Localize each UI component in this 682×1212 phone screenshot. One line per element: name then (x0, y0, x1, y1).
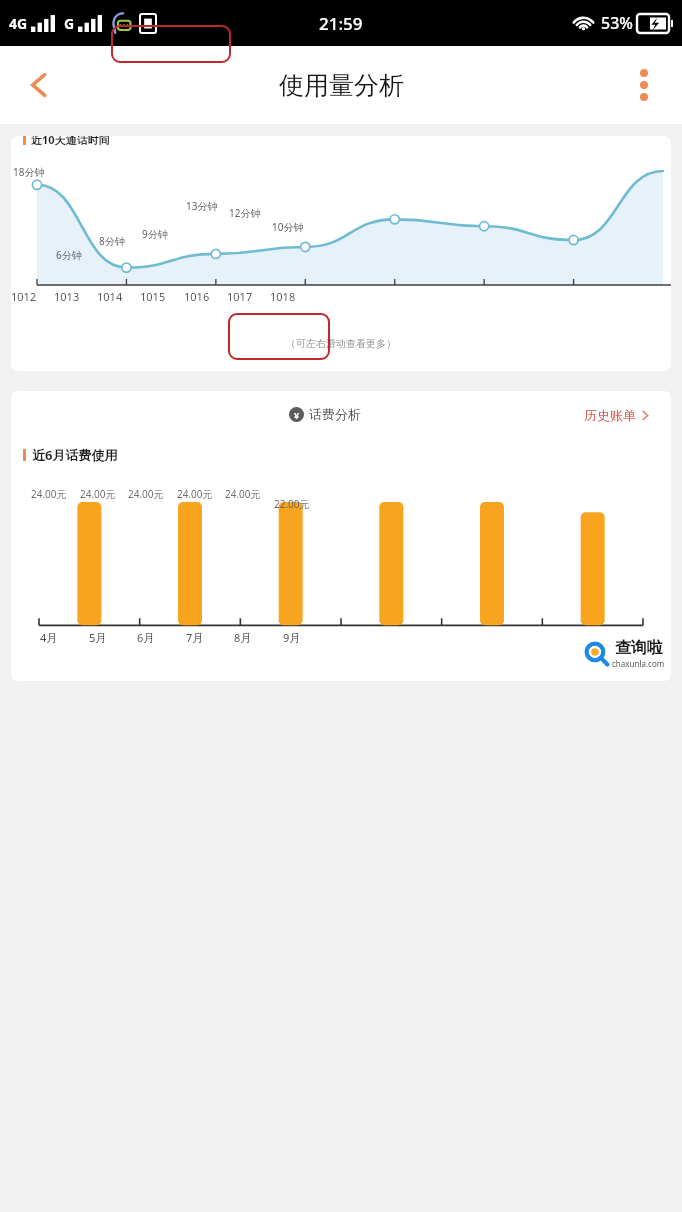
staticText: ¥ (294, 409, 300, 421)
staticText: 1014 (97, 289, 123, 304)
staticText: chaxunla.com (612, 658, 665, 669)
staticText: 1013 (54, 289, 80, 304)
staticText: 1012 (11, 289, 37, 304)
staticText: 话费分析 (309, 406, 361, 422)
staticText: 8月 (234, 630, 252, 645)
button[interactable]: ¥ (289, 406, 361, 422)
staticText: 4G (9, 14, 28, 33)
staticText: 4月 (40, 630, 58, 645)
staticText: 8分钟 (99, 234, 125, 248)
staticText: 6分钟 (56, 248, 82, 262)
staticText: 53% (601, 12, 633, 34)
staticText: G (64, 14, 75, 33)
staticText: 近6月话费使用 (32, 446, 118, 464)
staticText: 7月 (186, 630, 204, 645)
staticText: 近10天通话时间 (31, 136, 110, 147)
staticText: 12分钟 (229, 206, 261, 220)
staticText: 24.00元 (31, 487, 67, 501)
staticText: 10分钟 (272, 220, 304, 234)
staticText: 9分钟 (142, 227, 168, 241)
staticText: 历史账单 (584, 407, 636, 423)
staticText: 1016 (184, 289, 210, 304)
staticText: 6月 (137, 630, 155, 645)
staticText: （可左右滑动查看更多） (286, 337, 396, 350)
staticText: 13分钟 (186, 199, 218, 213)
staticText: 24.00元 (225, 487, 261, 501)
staticText: 1015 (140, 289, 166, 304)
staticText: 18分钟 (13, 165, 45, 179)
staticText: 24.00元 (177, 487, 213, 501)
staticText: 1018 (270, 289, 296, 304)
staticText: 21:59 (319, 12, 363, 35)
button[interactable]: 更多选项 (618, 59, 670, 111)
staticText: 5月 (89, 630, 107, 645)
staticText: 24.00元 (80, 487, 116, 501)
staticText: 24.00元 (128, 487, 164, 501)
staticText: 22.00元 (274, 497, 310, 511)
staticText: 9月 (283, 630, 301, 645)
staticText: 使用量分析 (279, 70, 404, 101)
staticText: 查询啦 (615, 638, 663, 658)
staticText: 1017 (227, 289, 253, 304)
button[interactable]: 返回 (10, 56, 68, 114)
button[interactable]: 历史账单 (580, 403, 653, 427)
